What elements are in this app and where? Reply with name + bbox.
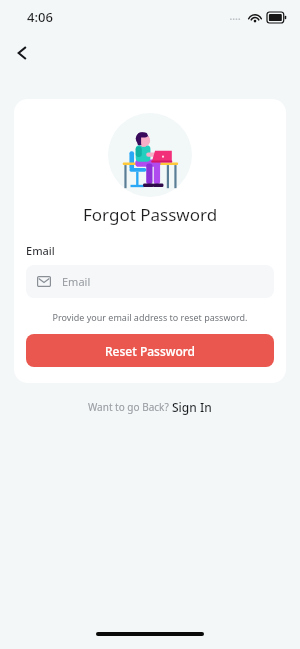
staticText: Want to go Back? xyxy=(88,400,172,414)
button[interactable]: Email xyxy=(26,265,274,298)
staticText: Provide your email address to reset pass… xyxy=(26,311,274,323)
button[interactable]: Back xyxy=(6,37,38,69)
staticText: Email xyxy=(26,243,55,258)
staticText: Forgot Password xyxy=(83,203,218,226)
staticText: Sign In xyxy=(172,399,212,415)
staticText: Email xyxy=(62,274,91,289)
staticText: Reset Password xyxy=(105,343,196,359)
staticText: 4:06 xyxy=(27,8,53,26)
button[interactable]: Reset Password xyxy=(26,334,274,367)
button[interactable]: Want to go Back? xyxy=(88,399,212,415)
